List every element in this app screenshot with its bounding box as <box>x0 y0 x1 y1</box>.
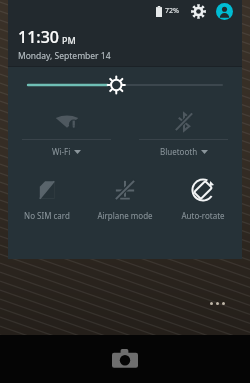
staticText: PM <box>62 34 76 46</box>
staticText: Auto-rotate <box>181 210 225 221</box>
button[interactable]: Camera <box>108 342 142 376</box>
button[interactable]: User profile <box>214 1 234 21</box>
button[interactable] <box>8 67 242 102</box>
button[interactable]: No SIM card <box>8 168 86 230</box>
button[interactable]: Auto-rotate <box>164 168 242 230</box>
button[interactable]: Settings <box>188 1 208 21</box>
staticText: 72% <box>165 6 179 16</box>
button[interactable]: More options <box>210 302 225 305</box>
staticText: No SIM card <box>24 210 70 221</box>
staticText: Monday, September 14 <box>18 50 111 62</box>
button[interactable]: 11:30 <box>8 22 242 66</box>
button[interactable]: Bluetooth <box>125 102 242 168</box>
staticText: 11:30 <box>18 26 59 48</box>
staticText: Airplane mode <box>97 210 153 221</box>
staticText: Bluetooth <box>160 146 198 157</box>
button[interactable]: Wi-Fi <box>8 102 125 168</box>
staticText: Wi-Fi <box>52 146 71 157</box>
button[interactable]: Airplane mode <box>86 168 164 230</box>
